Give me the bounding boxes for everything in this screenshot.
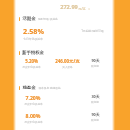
- staticText: 买入价格: [62, 65, 73, 68]
- staticText: 稳盈金: [22, 85, 36, 91]
- staticText: 锁定期: [91, 100, 99, 103]
- staticText: 新手特权金: [22, 50, 44, 56]
- staticText: 锁定期: [91, 64, 99, 67]
- staticText: 7.20%: [25, 94, 41, 101]
- staticText: 历史年化收益率: [24, 102, 43, 105]
- staticText: 8.00%: [25, 112, 41, 119]
- staticText: 活期金: [22, 16, 36, 22]
- staticText: 90天: [91, 58, 100, 63]
- staticText: 5.20%: [25, 58, 38, 64]
- staticText: 90天: [91, 112, 100, 117]
- staticText: 272.99: [60, 3, 78, 11]
- staticText: 246.00元/克: [55, 58, 80, 64]
- staticText: 七日年化收益率: [23, 37, 43, 41]
- staticText: 锁定期: [91, 118, 99, 121]
- staticText: 随时可取 收益高: [38, 17, 58, 21]
- staticText: 1元起购 随时可取: [81, 29, 104, 33]
- staticText: ›: [88, 6, 90, 11]
- staticText: 历史年化收益率: [22, 65, 41, 68]
- staticText: 2.58%: [23, 26, 44, 36]
- staticText: 元/克: [78, 7, 86, 11]
- staticText: 历史年化收益率: [24, 120, 43, 123]
- staticText: 30天: [91, 94, 100, 99]
- staticText: 保本保息 稳健收益: [38, 86, 61, 90]
